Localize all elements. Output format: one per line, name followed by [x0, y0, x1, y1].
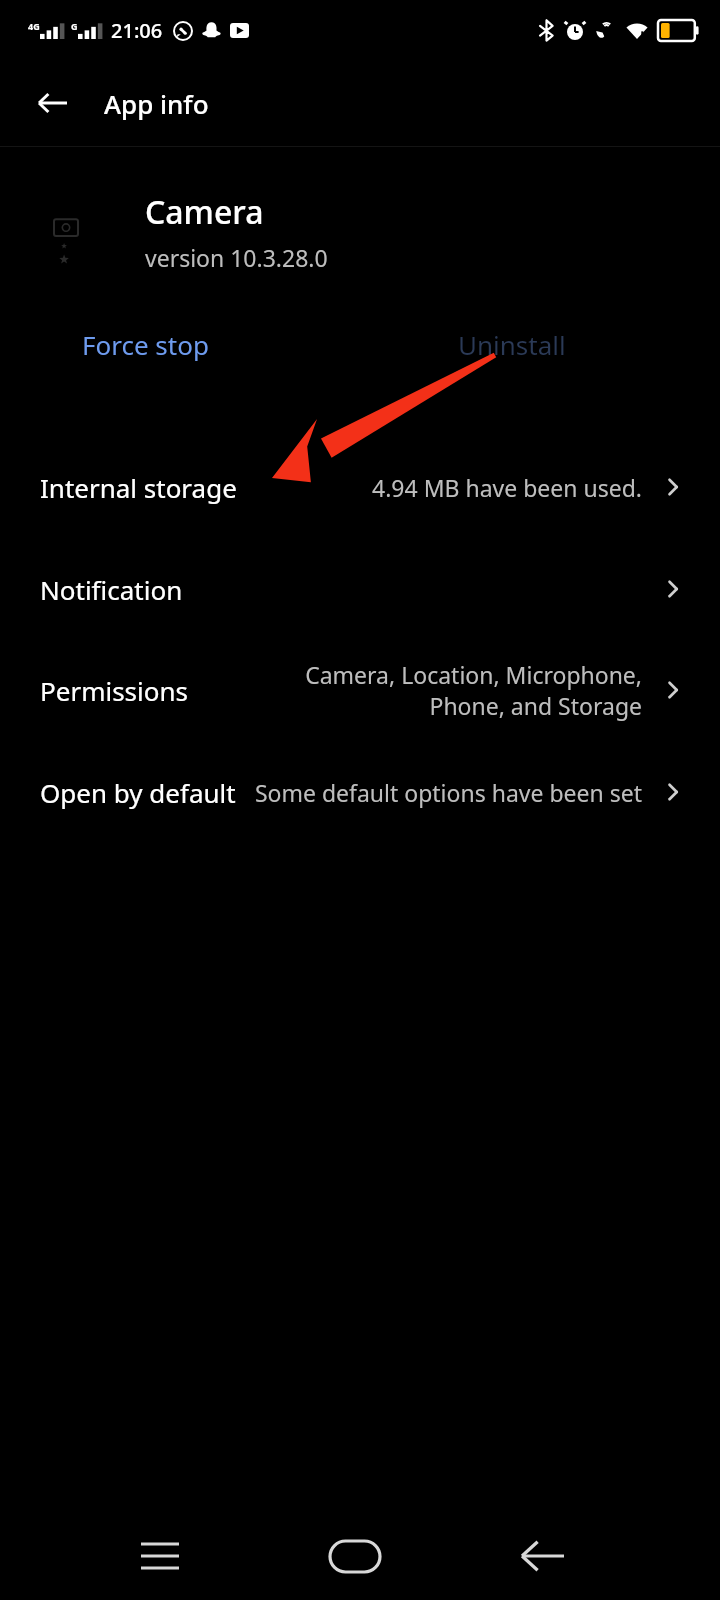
button[interactable]: Back [500, 1512, 584, 1600]
staticText: Open by default [40, 775, 236, 810]
staticText: Permissions [40, 673, 189, 708]
button[interactable]: Home [313, 1512, 397, 1600]
button[interactable]: Internal storage [0, 437, 720, 537]
staticText: 4.94 MB have been used. [252, 472, 642, 503]
staticText: version 10.3.28.0 [145, 242, 328, 273]
button[interactable]: Notification [0, 539, 720, 639]
staticText: 21:06 [111, 17, 163, 44]
button[interactable]: Uninstall [458, 327, 566, 362]
staticText: Uninstall [458, 327, 566, 362]
staticText: App info [104, 86, 209, 121]
button[interactable]: Back [24, 75, 80, 131]
button[interactable]: Recent apps [118, 1512, 202, 1600]
staticText: Notification [40, 572, 183, 607]
staticText: Camera, Location, Microphone, Phone, and… [252, 659, 642, 721]
staticText: Some default options have been set [252, 777, 642, 808]
button[interactable]: Open by default [0, 742, 720, 842]
button[interactable]: Force stop [82, 327, 209, 362]
staticText: G [71, 20, 78, 32]
staticText: 4G [28, 20, 40, 32]
button[interactable]: Permissions [0, 640, 720, 740]
staticText: Internal storage [40, 470, 237, 505]
staticText: Camera [145, 190, 264, 234]
staticText: Force stop [82, 327, 209, 362]
